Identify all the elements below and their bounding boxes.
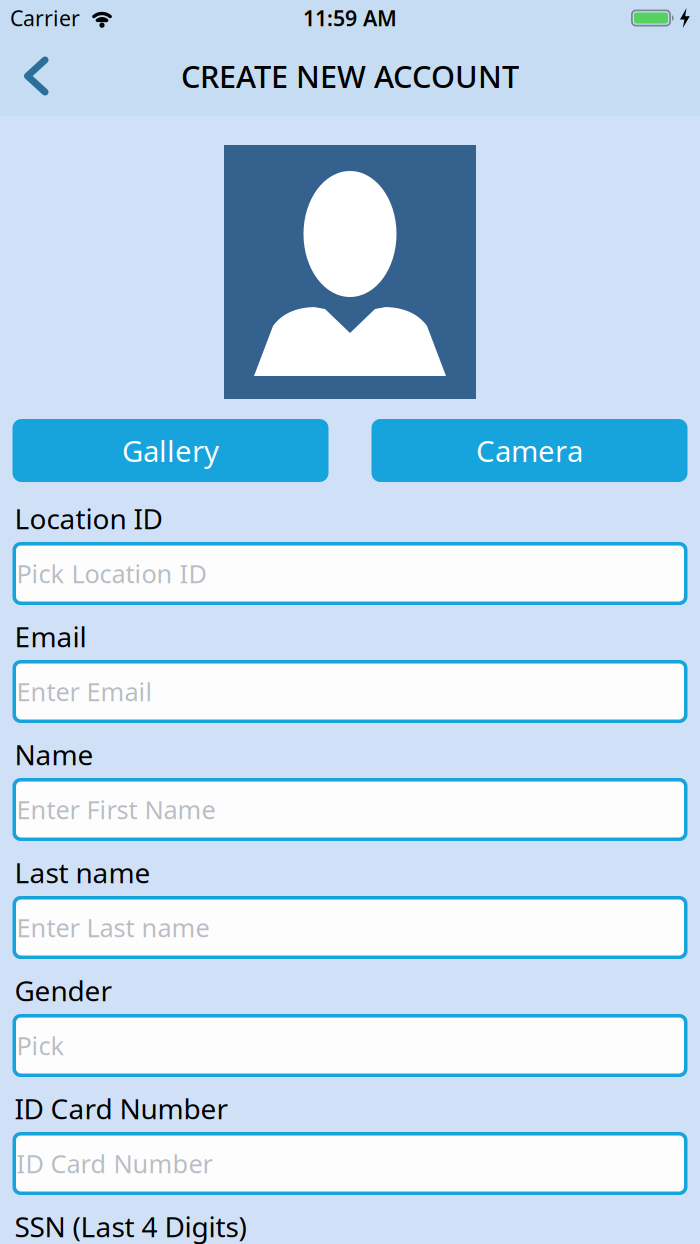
- button[interactable]: Gallery: [12, 419, 328, 482]
- staticText: Camera: [476, 431, 583, 470]
- staticText: Last name: [14, 854, 150, 891]
- staticText: Carrier: [10, 4, 80, 32]
- staticText: Gallery: [122, 431, 219, 470]
- staticText: Name: [14, 736, 93, 773]
- staticText: Gender: [14, 972, 112, 1009]
- staticText: Pick: [16, 1029, 64, 1062]
- staticText: 11:59 AM: [303, 4, 397, 32]
- button[interactable]: Enter Last name: [12, 896, 687, 959]
- staticText: SSN (Last 4 Digits): [14, 1208, 246, 1244]
- button[interactable]: Pick Location ID: [12, 542, 687, 605]
- staticText: Location ID: [14, 500, 162, 537]
- staticText: Enter Email: [16, 675, 152, 708]
- staticText: ID Card Number: [16, 1147, 212, 1180]
- button[interactable]: Enter Email: [12, 660, 687, 723]
- button[interactable]: Back: [0, 42, 49, 109]
- staticText: Enter First Name: [16, 793, 215, 826]
- staticText: Email: [14, 618, 86, 655]
- button[interactable]: ID Card Number: [12, 1132, 687, 1195]
- button[interactable]: Enter First Name: [12, 778, 687, 841]
- button[interactable]: Camera: [371, 419, 687, 482]
- staticText: Enter Last name: [16, 911, 209, 944]
- staticText: ID Card Number: [14, 1090, 228, 1127]
- staticText: Pick Location ID: [16, 557, 206, 590]
- staticText: CREATE NEW ACCOUNT: [181, 56, 519, 96]
- button[interactable]: Pick: [12, 1014, 687, 1077]
